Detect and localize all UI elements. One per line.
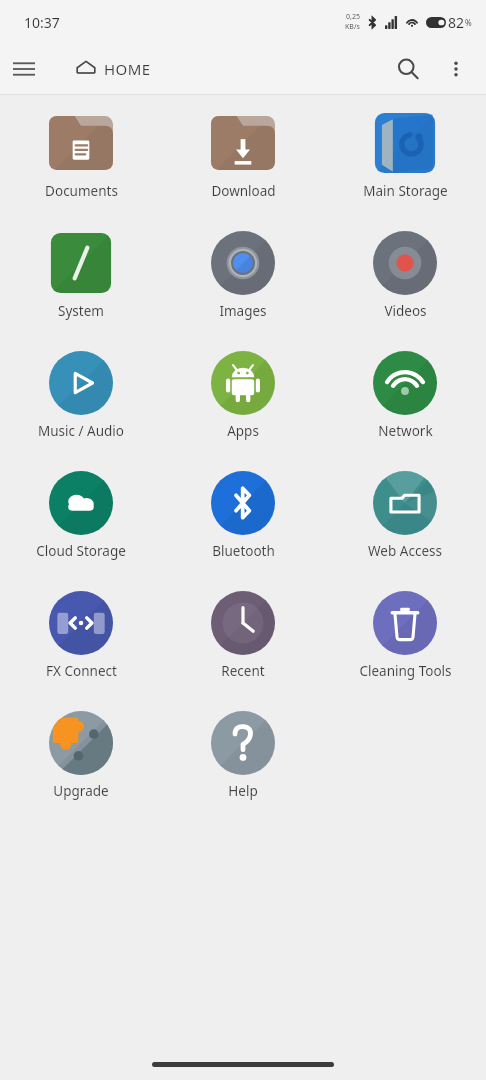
- button[interactable]: Search: [384, 45, 432, 93]
- staticText: Documents: [45, 182, 118, 200]
- button[interactable]: Network: [324, 339, 486, 440]
- staticText: System: [58, 302, 104, 320]
- staticText: Download: [211, 182, 276, 200]
- staticText: Help: [228, 782, 258, 800]
- button[interactable]: Music / Audio: [0, 339, 162, 440]
- staticText: Upgrade: [53, 782, 109, 800]
- staticText: HOME: [104, 59, 151, 79]
- button[interactable]: Cleaning Tools: [324, 579, 486, 680]
- button[interactable]: Recent: [162, 579, 324, 680]
- staticText: Music / Audio: [38, 422, 124, 440]
- button[interactable]: Main Storage: [324, 99, 486, 200]
- staticText: %: [465, 17, 472, 28]
- button[interactable]: Images: [162, 219, 324, 320]
- button[interactable]: More options: [432, 45, 480, 93]
- staticText: Apps: [227, 422, 259, 440]
- staticText: 10:37: [24, 13, 60, 32]
- staticText: Web Access: [368, 542, 442, 560]
- staticText: KB/s: [345, 22, 360, 32]
- staticText: Recent: [221, 662, 265, 680]
- button[interactable]: Bluetooth: [162, 459, 324, 560]
- button[interactable]: Apps: [162, 339, 324, 440]
- staticText: Main Storage: [363, 182, 448, 200]
- staticText: Network: [378, 422, 433, 440]
- staticText: Videos: [384, 302, 427, 320]
- button[interactable]: Help: [162, 699, 324, 800]
- button[interactable]: Open navigation menu: [0, 45, 48, 93]
- button[interactable]: Videos: [324, 219, 486, 320]
- staticText: Images: [219, 302, 267, 320]
- button[interactable]: Cloud Storage: [0, 459, 162, 560]
- button[interactable]: Web Access: [324, 459, 486, 560]
- button[interactable]: Upgrade: [0, 699, 162, 800]
- button[interactable]: HOME: [72, 51, 155, 87]
- button[interactable]: System: [0, 219, 162, 320]
- staticText: FX Connect: [46, 662, 117, 680]
- staticText: Cloud Storage: [36, 542, 126, 560]
- staticText: Bluetooth: [212, 542, 275, 560]
- staticText: 82: [448, 13, 465, 32]
- button[interactable]: Download: [162, 99, 324, 200]
- button[interactable]: Documents: [0, 99, 162, 200]
- staticText: Cleaning Tools: [359, 662, 452, 680]
- staticText: 0,25: [346, 12, 360, 22]
- button[interactable]: FX Connect: [0, 579, 162, 680]
